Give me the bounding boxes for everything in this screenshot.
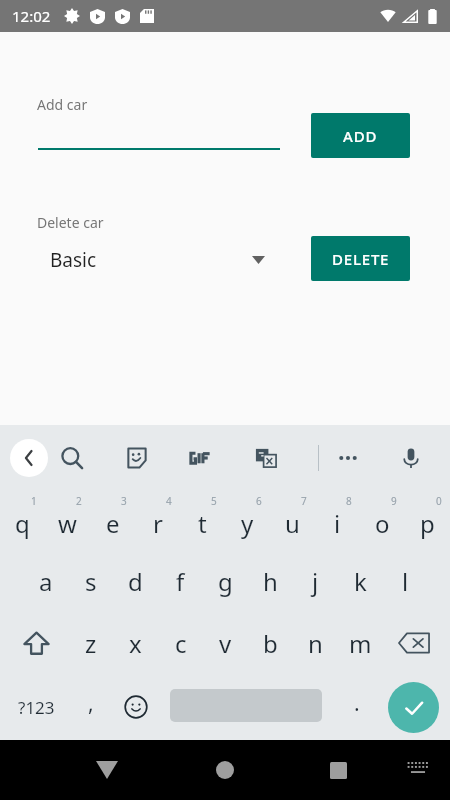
staticText: 9 bbox=[391, 494, 397, 508]
button[interactable]: . bbox=[336, 674, 378, 740]
staticText: 4 bbox=[166, 494, 172, 508]
staticText: j bbox=[312, 565, 319, 598]
staticText: Basic bbox=[50, 247, 97, 273]
staticText: 7 bbox=[301, 494, 307, 508]
staticText: k bbox=[354, 565, 367, 598]
staticText: r bbox=[153, 507, 163, 540]
staticText: m bbox=[349, 627, 372, 660]
button[interactable]: Keyboard bbox=[404, 756, 432, 778]
button[interactable]: r bbox=[135, 490, 180, 550]
button[interactable]: Search bbox=[50, 436, 94, 480]
staticText: g bbox=[218, 565, 233, 598]
button[interactable]: x bbox=[113, 612, 158, 674]
staticText: DELETE bbox=[332, 249, 390, 269]
staticText: Delete car bbox=[37, 213, 104, 232]
button[interactable]: Emoji bbox=[114, 674, 158, 740]
button[interactable]: g bbox=[203, 550, 248, 612]
staticText: s bbox=[85, 565, 97, 598]
button[interactable]: f bbox=[158, 550, 203, 612]
staticText: e bbox=[106, 507, 120, 540]
staticText: h bbox=[263, 565, 278, 598]
button[interactable]: Shift bbox=[5, 612, 67, 674]
button[interactable]: m bbox=[338, 612, 383, 674]
button[interactable]: ?123 bbox=[2, 674, 70, 740]
button[interactable]: Voice input bbox=[389, 436, 433, 480]
button[interactable]: k bbox=[338, 550, 383, 612]
button[interactable]: d bbox=[113, 550, 158, 612]
button[interactable]: GIF bbox=[179, 436, 223, 480]
button[interactable]: y bbox=[225, 490, 270, 550]
staticText: ADD bbox=[343, 126, 378, 146]
button[interactable]: z bbox=[68, 612, 113, 674]
staticText: 3 bbox=[121, 494, 127, 508]
staticText: 12:02 bbox=[12, 6, 51, 26]
button[interactable]: Home bbox=[205, 750, 245, 790]
button[interactable]: More options bbox=[326, 436, 370, 480]
button[interactable]: q bbox=[0, 490, 45, 550]
staticText: z bbox=[85, 627, 97, 660]
button[interactable]: Translate bbox=[244, 436, 288, 480]
staticText: 5 bbox=[211, 494, 217, 508]
staticText: i bbox=[334, 507, 341, 540]
button[interactable]: v bbox=[203, 612, 248, 674]
button[interactable]: Enter bbox=[388, 682, 439, 733]
button[interactable]: l bbox=[383, 550, 428, 612]
staticText: w bbox=[58, 507, 77, 540]
staticText: p bbox=[420, 507, 435, 540]
staticText: b bbox=[263, 627, 278, 660]
button[interactable]: Back bbox=[10, 439, 48, 477]
button[interactable]: Backspace bbox=[383, 612, 445, 674]
staticText: . bbox=[354, 689, 360, 718]
button[interactable]: Basic bbox=[37, 237, 277, 283]
staticText: q bbox=[15, 507, 30, 540]
staticText: y bbox=[241, 507, 254, 540]
staticText: t bbox=[198, 507, 207, 540]
button[interactable]: c bbox=[158, 612, 203, 674]
button[interactable]: Back bbox=[87, 750, 127, 790]
staticText: 6 bbox=[256, 494, 262, 508]
button[interactable]: ADD bbox=[311, 113, 410, 158]
button[interactable]: w bbox=[45, 490, 90, 550]
staticText: , bbox=[88, 689, 94, 718]
staticText: a bbox=[39, 565, 53, 598]
button[interactable]: b bbox=[248, 612, 293, 674]
staticText: ?123 bbox=[18, 696, 55, 719]
button[interactable]: o bbox=[360, 490, 405, 550]
button[interactable]: n bbox=[293, 612, 338, 674]
staticText: c bbox=[175, 627, 187, 660]
button[interactable]: j bbox=[293, 550, 338, 612]
button[interactable]: e bbox=[90, 490, 135, 550]
staticText: 0 bbox=[436, 494, 442, 508]
staticText: Add car bbox=[37, 95, 88, 114]
button[interactable]: , bbox=[70, 674, 112, 740]
button[interactable]: s bbox=[68, 550, 113, 612]
staticText: d bbox=[128, 565, 143, 598]
button[interactable]: h bbox=[248, 550, 293, 612]
button[interactable]: Stickers bbox=[115, 436, 159, 480]
staticText: x bbox=[129, 627, 142, 660]
staticText: l bbox=[402, 565, 409, 598]
button[interactable]: a bbox=[23, 550, 68, 612]
staticText: o bbox=[375, 507, 390, 540]
button[interactable]: u bbox=[270, 490, 315, 550]
button[interactable]: i bbox=[315, 490, 360, 550]
button[interactable]: DELETE bbox=[311, 236, 410, 281]
staticText: 8 bbox=[346, 494, 352, 508]
staticText: 2 bbox=[76, 494, 82, 508]
button[interactable]: p bbox=[405, 490, 450, 550]
button[interactable]: t bbox=[180, 490, 225, 550]
staticText: n bbox=[308, 627, 323, 660]
staticText: f bbox=[176, 565, 185, 598]
staticText: v bbox=[219, 627, 232, 660]
staticText: u bbox=[285, 507, 300, 540]
staticText: 1 bbox=[31, 494, 37, 508]
button[interactable]: Recent apps bbox=[318, 750, 358, 790]
